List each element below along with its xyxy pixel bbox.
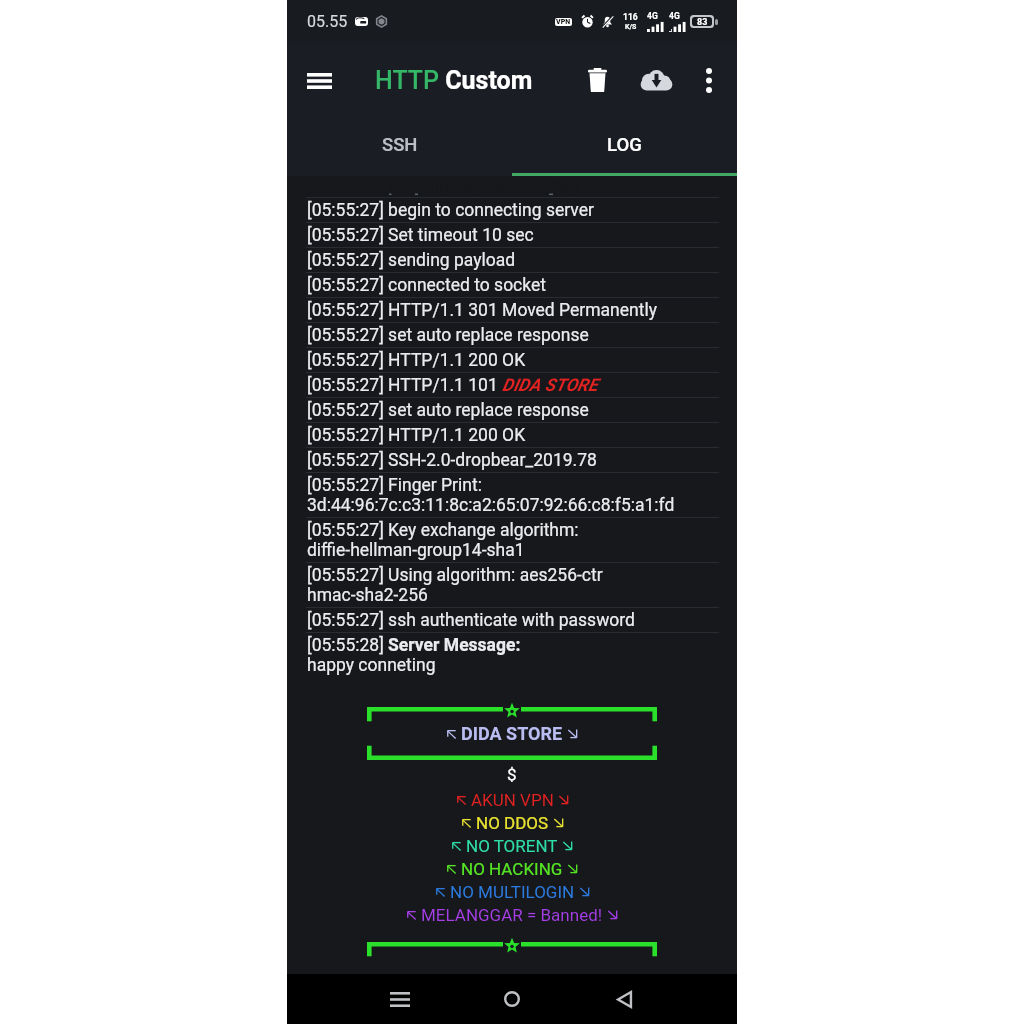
button[interactable]: LOG <box>512 117 737 173</box>
staticText: 05.55 <box>307 12 348 31</box>
staticText: [05:55:27] HTTP/1.1 200 OK <box>307 425 526 446</box>
staticText: [05:55:27] sending payload <box>307 250 516 271</box>
staticText: 4G <box>647 11 658 21</box>
staticText: [05:55:27] HTTP/1.1 200 OK <box>307 350 526 371</box>
button[interactable]: Clear log <box>574 57 620 103</box>
staticText: DIDA STORE <box>461 723 563 744</box>
button[interactable]: Home <box>484 974 540 1024</box>
staticText: [05:55:27] copying payload to proxy <box>307 176 582 197</box>
button[interactable]: Download <box>633 57 679 103</box>
button[interactable]: Recent apps <box>372 974 428 1024</box>
button[interactable]: Open navigation menu <box>297 58 342 103</box>
staticText: [05:55:27] ssh authenticate with passwor… <box>307 610 635 631</box>
staticText: HTTP Custom <box>375 66 533 95</box>
staticText: SSH <box>382 134 418 156</box>
staticText: [05:55:28] Server Message: happy conneti… <box>307 635 521 675</box>
staticText: 116 <box>623 12 638 22</box>
staticText: [05:55:27] connected to socket <box>307 275 546 296</box>
staticText: [05:55:27] Using algorithm: aes256-ctr h… <box>307 565 603 605</box>
button[interactable]: More options <box>688 59 730 101</box>
staticText: NO HACKING <box>461 859 563 879</box>
staticText: [05:55:27] HTTP/1.1 301 Moved Permanentl… <box>307 300 657 321</box>
staticText: LOG <box>607 134 642 156</box>
staticText: MELANGGAR = Banned! <box>421 905 603 925</box>
button[interactable]: SSH <box>287 117 512 173</box>
staticText: 83 <box>697 17 708 26</box>
staticText: [05:55:27] SSH-2.0-dropbear_2019.78 <box>307 450 597 471</box>
staticText: [05:55:27] Key exchange algorithm: diffi… <box>307 520 579 560</box>
staticText: [05:55:27] set auto replace response <box>307 400 589 421</box>
staticText: [05:55:27] Set timeout 10 sec <box>307 225 534 246</box>
staticText: [05:55:27] set auto replace response <box>307 325 589 346</box>
staticText: VPN <box>556 18 571 26</box>
staticText: 4G <box>669 11 680 21</box>
staticText: AKUN VPN <box>471 790 554 810</box>
staticText: NO DDOS <box>476 813 549 833</box>
button[interactable]: Back <box>596 974 652 1024</box>
staticText: NO MULTILOGIN <box>450 882 575 902</box>
staticText: NO TORENT <box>466 836 558 856</box>
staticText: K/S <box>625 23 637 31</box>
staticText: $ <box>507 764 517 784</box>
staticText: [05:55:27] Finger Print: 3d:44:96:7c:c3:… <box>307 475 675 515</box>
staticText: [05:55:27] HTTP/1.1 101 DIDA STORE <box>307 375 598 396</box>
staticText: [05:55:27] begin to connecting server <box>307 200 594 221</box>
